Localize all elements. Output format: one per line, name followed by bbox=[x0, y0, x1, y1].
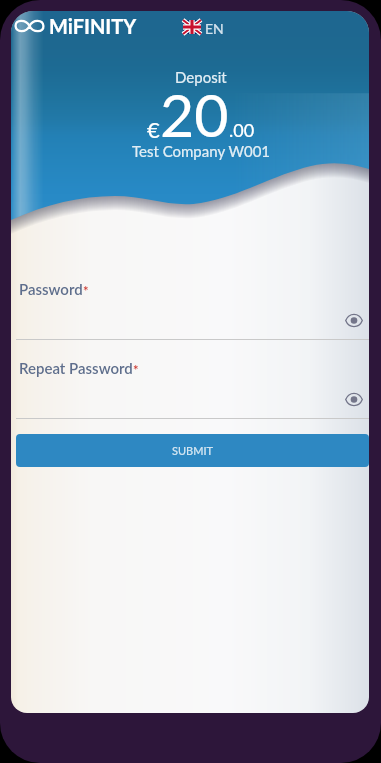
staticText: * bbox=[133, 362, 139, 378]
staticText: 20 bbox=[160, 79, 229, 150]
other: Language: English bbox=[183, 20, 201, 34]
staticText: * bbox=[83, 283, 89, 299]
other: MiFINITY bbox=[15, 19, 44, 33]
button[interactable]: Show password bbox=[342, 308, 366, 332]
button[interactable]: SUBMIT bbox=[16, 434, 369, 467]
staticText: SUBMIT bbox=[172, 444, 213, 457]
staticText: MiFINITY bbox=[49, 14, 137, 38]
staticText: € bbox=[147, 116, 160, 142]
button[interactable]: Show password bbox=[342, 387, 366, 411]
staticText: Password bbox=[19, 280, 83, 298]
button[interactable]: Language: English bbox=[183, 20, 224, 37]
staticText: EN bbox=[205, 20, 224, 37]
staticText: .00 bbox=[229, 119, 255, 141]
staticText: Test Company W001 bbox=[132, 142, 271, 160]
staticText: Repeat Password bbox=[19, 359, 133, 377]
staticText: Deposit bbox=[175, 68, 227, 86]
